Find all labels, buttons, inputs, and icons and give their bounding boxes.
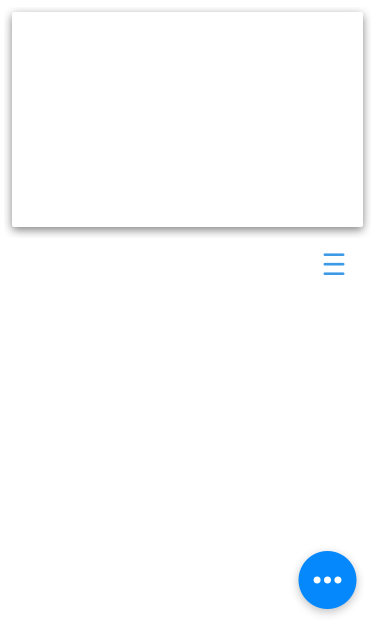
button[interactable]: More options bbox=[298, 551, 356, 609]
button[interactable]: Menu bbox=[318, 248, 350, 280]
